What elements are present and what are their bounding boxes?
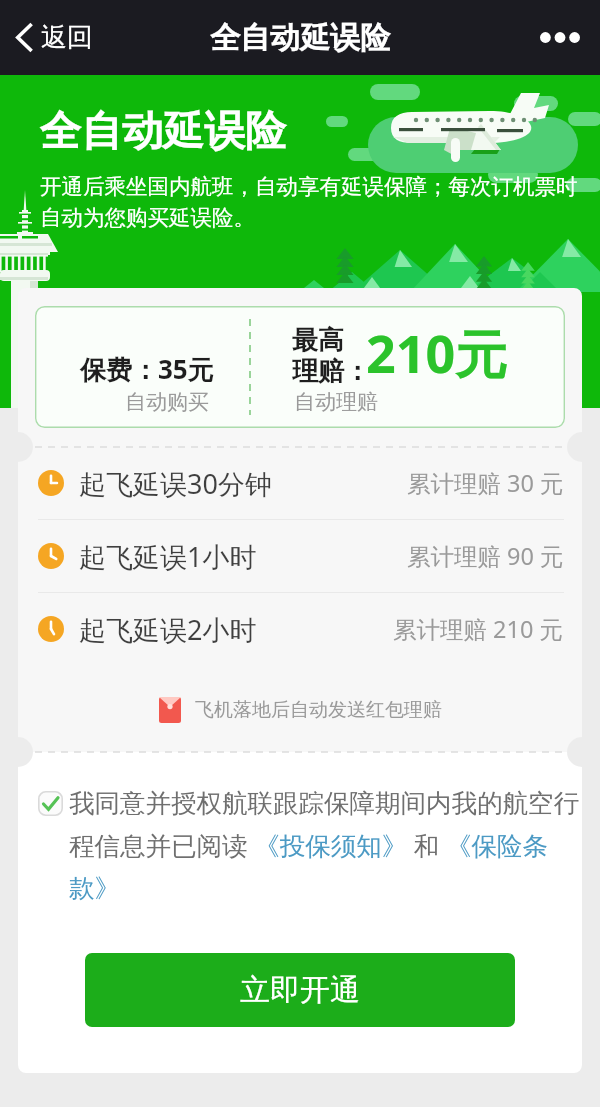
- staticText: 返回: [41, 21, 93, 54]
- staticText: 起飞延误2小时: [79, 611, 257, 648]
- staticText: 累计理赔 30 元: [407, 467, 564, 499]
- button[interactable]: Agree to terms: [38, 791, 63, 816]
- staticText: 立即开通: [240, 971, 360, 1009]
- staticText: 飞机落地后自动发送红包理赔: [195, 698, 442, 722]
- button[interactable]: 起飞延误2小时: [18, 593, 582, 665]
- staticText: 自动购买: [125, 389, 209, 415]
- staticText: 自动理赔: [294, 389, 378, 415]
- staticText: 最高 理赔：: [292, 324, 370, 388]
- staticText: 我同意并授权航联跟踪保障期间内我的航空行程信息并已阅读 《投保须知》 和 《保险…: [69, 787, 580, 905]
- button[interactable]: 立即开通: [85, 953, 515, 1027]
- staticText: 累计理赔 210 元: [393, 613, 564, 645]
- staticText: 起飞延误30分钟: [79, 465, 272, 502]
- staticText: 开通后乘坐国内航班，自动享有延误保障；每次订机票时 自动为您购买延误险。: [40, 173, 578, 232]
- staticText: 全自动延误险: [210, 19, 390, 57]
- staticText: 全自动延误险: [40, 106, 286, 158]
- staticText: 累计理赔 90 元: [407, 540, 564, 572]
- button[interactable]: 起飞延误1小时: [18, 520, 582, 592]
- staticText: 起飞延误1小时: [79, 538, 257, 575]
- button[interactable]: 返回: [0, 0, 107, 75]
- staticText: 保费：35元: [80, 351, 214, 387]
- button[interactable]: More options: [520, 0, 600, 75]
- button[interactable]: 起飞延误30分钟: [18, 447, 582, 519]
- staticText: 210元: [366, 317, 508, 388]
